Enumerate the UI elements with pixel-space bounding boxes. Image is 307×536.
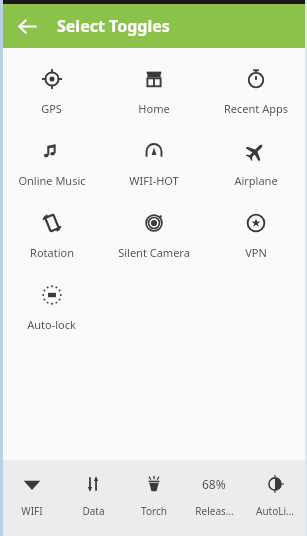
- button[interactable]: Auto-lock: [0, 280, 103, 336]
- button[interactable]: Torch: [125, 472, 183, 520]
- staticText: Torch: [141, 504, 167, 518]
- staticText: Online Music: [18, 173, 86, 188]
- staticText: Releas…: [195, 504, 234, 518]
- button[interactable]: AutoLi…: [246, 472, 304, 520]
- staticText: Auto-lock: [27, 317, 76, 332]
- staticText: WIFI-HOT: [129, 173, 179, 188]
- staticText: Home: [138, 101, 170, 116]
- button[interactable]: VPN: [205, 208, 307, 264]
- button[interactable]: WIFI-HOT: [103, 136, 205, 192]
- staticText: VPN: [245, 245, 267, 260]
- button[interactable]: Recent Apps: [205, 64, 307, 120]
- staticText: Data: [82, 504, 105, 518]
- staticText: AutoLi…: [256, 504, 294, 518]
- button[interactable]: GPS: [0, 64, 103, 120]
- staticText: Select Toggles: [57, 15, 170, 37]
- staticText: 68%: [202, 476, 226, 492]
- button[interactable]: Back: [10, 9, 44, 43]
- staticText: GPS: [41, 101, 62, 116]
- button[interactable]: Airplane: [205, 136, 307, 192]
- staticText: Rotation: [30, 245, 74, 260]
- button[interactable]: Rotation: [0, 208, 103, 264]
- button[interactable]: WIFI: [3, 472, 61, 520]
- button[interactable]: Online Music: [0, 136, 103, 192]
- button[interactable]: Home: [103, 64, 205, 120]
- staticText: Silent Camera: [118, 245, 190, 260]
- button[interactable]: Data: [64, 472, 122, 520]
- staticText: Recent Apps: [224, 101, 288, 116]
- staticText: Airplane: [234, 173, 278, 188]
- button[interactable]: Silent Camera: [103, 208, 205, 264]
- button[interactable]: 68%: [185, 472, 243, 520]
- staticText: WIFI: [21, 504, 43, 518]
